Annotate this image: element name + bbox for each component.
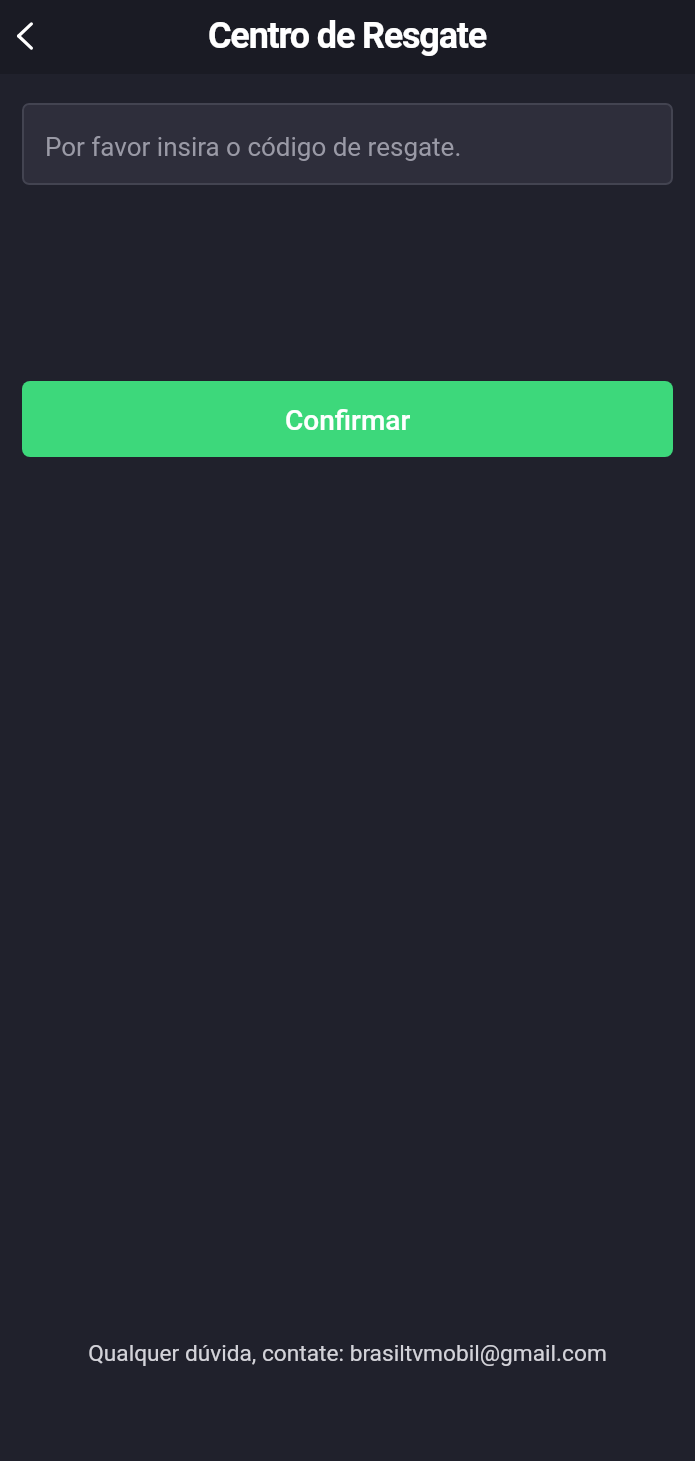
staticText: Confirmar [285, 404, 411, 437]
button[interactable]: Por favor insira o código de resgate. [22, 103, 673, 185]
staticText: Qualquer dúvida, contate: brasiltvmobil@… [0, 1340, 695, 1367]
button[interactable]: Confirmar [22, 381, 673, 457]
staticText: Por favor insira o código de resgate. [45, 132, 462, 162]
button[interactable]: Back [11, 16, 51, 56]
staticText: Centro de Resgate [208, 15, 486, 57]
